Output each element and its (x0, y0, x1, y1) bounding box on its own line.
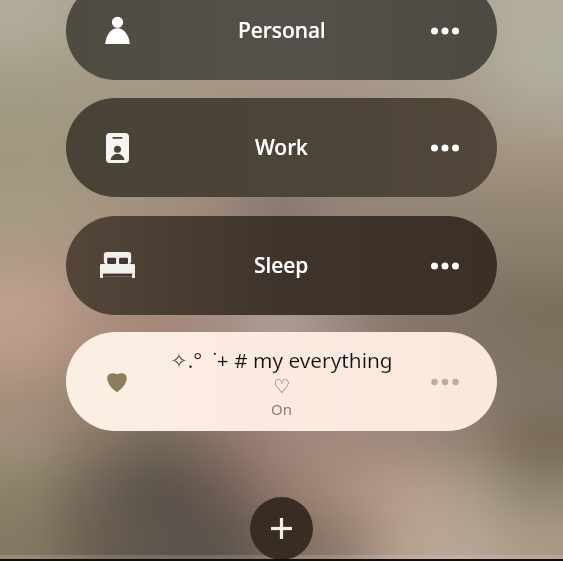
other: More options (428, 258, 462, 274)
staticText: On (271, 399, 292, 419)
staticText: Sleep (254, 251, 309, 280)
staticText: ♡ (273, 375, 291, 397)
other: More options (428, 140, 462, 156)
staticText: Personal (238, 16, 326, 45)
other: More options (428, 23, 462, 39)
other: More options (428, 374, 462, 390)
button[interactable]: Add (250, 497, 313, 560)
button[interactable]: Work (66, 98, 497, 197)
button[interactable]: Sleep (66, 216, 497, 315)
staticText: ✧.° ˙+ # my everything (170, 346, 393, 374)
button[interactable]: ✧.° ˙+ # my everything (66, 332, 497, 431)
button[interactable]: Personal (66, 0, 497, 80)
staticText: Work (255, 133, 308, 162)
